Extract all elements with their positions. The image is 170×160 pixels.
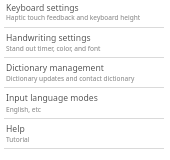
staticText: English, etc <box>6 105 41 114</box>
button[interactable]: Handwriting settings <box>0 28 170 58</box>
staticText: Input language modes <box>6 92 98 104</box>
staticText: Handwriting settings <box>6 32 91 44</box>
staticText: Tutorial <box>6 135 30 144</box>
staticText: Stand out timer, color, and font <box>6 44 101 53</box>
button[interactable]: Help <box>0 119 170 149</box>
staticText: Haptic touch feedback and keyboard heigh… <box>6 13 141 22</box>
staticText: Dictionary management <box>6 62 104 74</box>
staticText: Dictionary updates and contact dictionar… <box>6 74 135 83</box>
button[interactable]: Dictionary management <box>0 58 170 88</box>
button[interactable]: Input language modes <box>0 88 170 119</box>
staticText: Keyboard settings <box>6 2 79 14</box>
staticText: Help <box>6 123 25 135</box>
button[interactable]: Keyboard settings <box>0 0 170 28</box>
